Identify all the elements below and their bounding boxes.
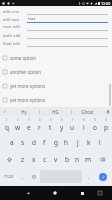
button[interactable]: x	[28, 151, 39, 168]
staticText: .	[88, 173, 90, 180]
button[interactable]: c	[39, 151, 50, 168]
button[interactable]: 9	[89, 117, 100, 134]
staticText: both edit	[3, 33, 27, 39]
staticText: 7	[72, 118, 74, 122]
staticText: r	[38, 123, 41, 132]
staticText: another option	[10, 69, 42, 75]
button[interactable]: Hy	[9, 107, 39, 116]
button[interactable]: d	[28, 134, 39, 151]
staticText: g	[54, 138, 58, 147]
staticText: b	[65, 155, 69, 164]
button[interactable]: m	[83, 151, 94, 168]
button[interactable]: b	[61, 151, 72, 168]
button[interactable]: Backspace	[94, 151, 111, 168]
button[interactable]: Home	[50, 188, 60, 198]
button[interactable]: edit two	[3, 16, 108, 23]
button[interactable]: next edit here	[3, 24, 108, 31]
staticText: n	[75, 155, 80, 164]
staticText: 12:00	[101, 1, 111, 6]
staticText: w	[15, 123, 21, 132]
staticText: e	[27, 123, 31, 132]
button[interactable]: another option	[3, 65, 108, 79]
button[interactable]: Back	[23, 188, 33, 198]
button[interactable]: 7	[67, 117, 78, 134]
staticText: 3	[28, 118, 30, 122]
staticText: q	[5, 123, 9, 132]
button[interactable]: 6	[56, 117, 67, 134]
button[interactable]: j	[72, 134, 83, 151]
staticText: v	[54, 155, 58, 164]
button[interactable]: yet more options	[3, 93, 108, 107]
staticText: t	[49, 123, 52, 132]
staticText: 8	[83, 118, 85, 122]
button[interactable]: 8	[78, 117, 89, 134]
button[interactable]: Shift	[1, 151, 17, 168]
button[interactable]: edit one	[3, 8, 108, 15]
staticText: Ghost	[81, 109, 94, 115]
staticText: y	[60, 123, 64, 132]
button[interactable]: Emoji	[28, 168, 39, 185]
button[interactable]: both edit	[3, 32, 108, 39]
staticText: l	[99, 138, 101, 147]
button[interactable]: yet more options	[3, 79, 108, 93]
staticText: i	[83, 123, 85, 132]
staticText: Hy	[21, 109, 27, 115]
button[interactable]: s	[17, 134, 28, 151]
staticText: some option	[10, 55, 36, 61]
staticText: ,	[22, 173, 24, 180]
button[interactable]: Recent apps	[77, 188, 87, 198]
button[interactable]: 2	[12, 117, 23, 134]
button[interactable]: k	[83, 134, 94, 151]
staticText: ?123	[4, 174, 14, 180]
button[interactable]: ,	[17, 168, 28, 185]
button[interactable]: final edit	[3, 40, 108, 47]
button[interactable]: h	[61, 134, 72, 151]
button[interactable]: 0	[100, 117, 111, 134]
staticText: z	[21, 155, 25, 164]
staticText: 1	[6, 118, 8, 122]
button[interactable]: l	[94, 134, 105, 151]
staticText: k	[87, 138, 91, 147]
button[interactable]: a	[6, 134, 17, 151]
button[interactable]: Ghost	[72, 107, 103, 116]
button[interactable]: v	[50, 151, 61, 168]
button[interactable]: HG	[40, 107, 71, 116]
staticText: 6	[61, 118, 63, 122]
staticText: 2	[17, 118, 19, 122]
button[interactable]: 5	[45, 117, 56, 134]
staticText: f	[43, 138, 46, 147]
staticText: p	[104, 123, 108, 132]
staticText: 9	[94, 118, 96, 122]
staticText: yet more options	[10, 83, 46, 89]
button[interactable]: some option	[3, 51, 108, 65]
staticText: a	[10, 138, 14, 147]
staticText: j	[77, 138, 79, 147]
staticText: o	[93, 123, 97, 132]
staticText: x	[32, 155, 36, 164]
staticText: s	[21, 138, 25, 147]
button[interactable]: Switch keyboard	[95, 188, 105, 198]
button[interactable]: ?123	[1, 168, 17, 185]
staticText: edit two	[3, 17, 27, 23]
staticText: edit one	[3, 9, 27, 15]
staticText: m	[85, 155, 92, 164]
staticText: next edit here	[3, 24, 27, 31]
staticText: yet more options	[10, 97, 46, 103]
button[interactable]: g	[50, 134, 61, 151]
button[interactable]: .	[83, 168, 94, 185]
button[interactable]: n	[72, 151, 83, 168]
button[interactable]: 3	[23, 117, 34, 134]
button[interactable]: f	[39, 134, 50, 151]
button[interactable]: 4	[34, 117, 45, 134]
staticText: d	[32, 138, 36, 147]
staticText: 0	[105, 118, 107, 122]
button[interactable]: Voice input	[103, 107, 112, 116]
button[interactable]: 1	[1, 117, 12, 134]
button[interactable]: Enter	[99, 173, 107, 181]
staticText: u	[70, 123, 75, 132]
staticText: c	[43, 155, 47, 164]
button[interactable]: z	[17, 151, 28, 168]
button[interactable]: More suggestions	[0, 107, 9, 116]
staticText: 4	[39, 118, 41, 122]
